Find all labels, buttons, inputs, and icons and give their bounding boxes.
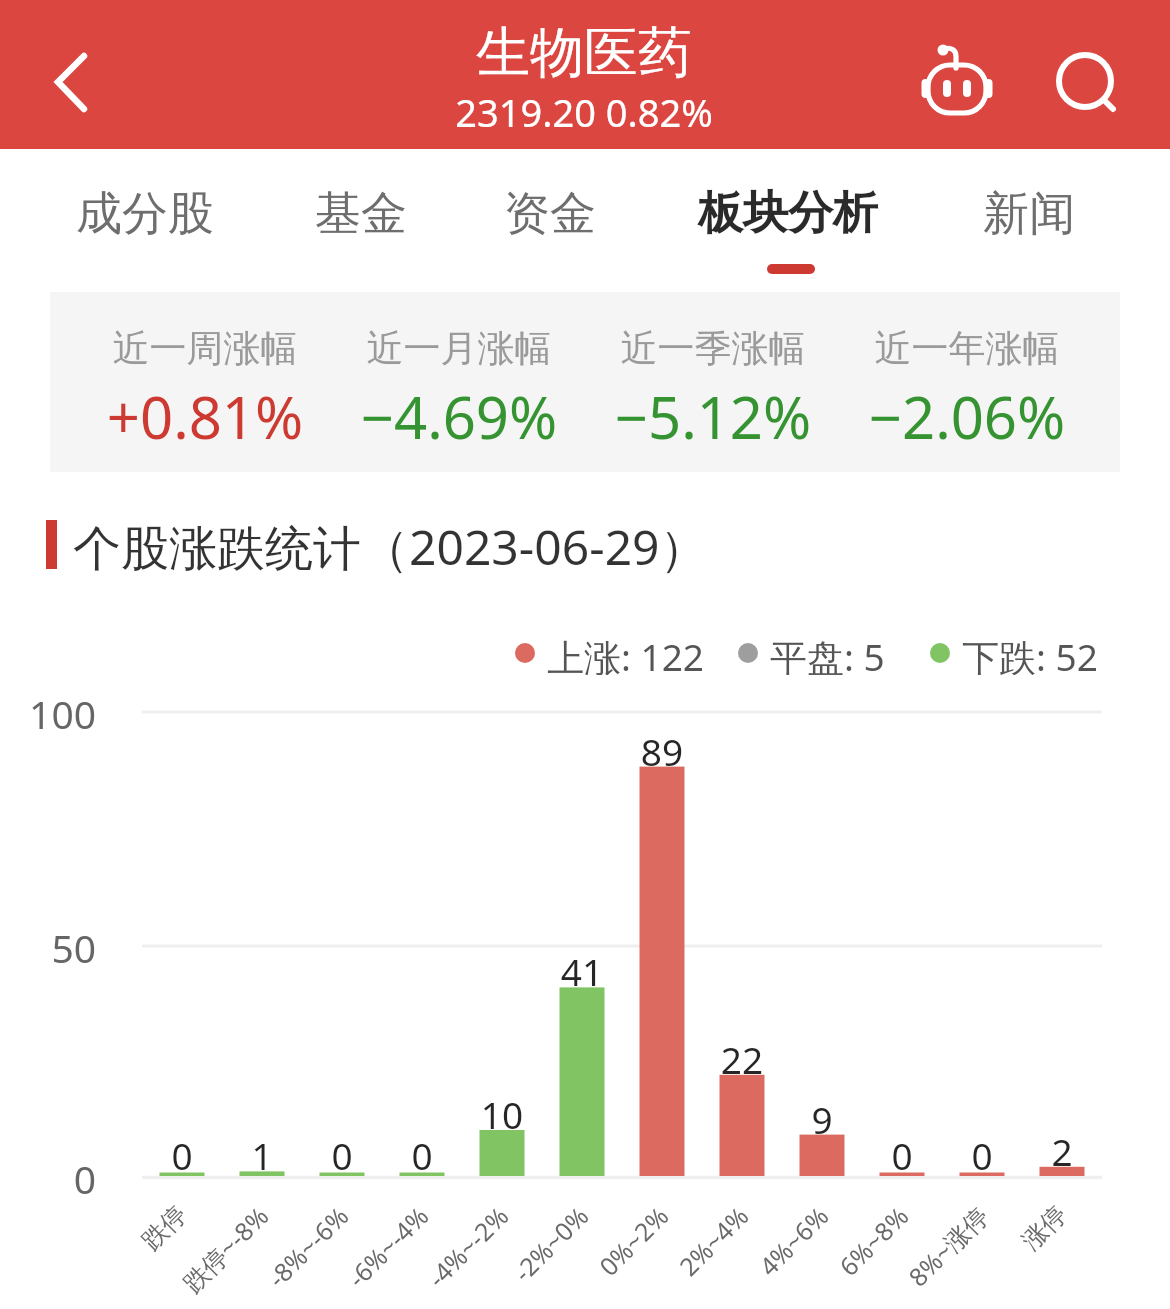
staticText: 89: [602, 726, 722, 776]
staticText: 近一月涨幅: [332, 325, 586, 372]
staticText: 9: [762, 1094, 882, 1144]
staticText: 上涨: 122: [547, 631, 705, 675]
button[interactable]: 新闻: [899, 149, 1159, 269]
staticText: 0: [0, 1152, 96, 1205]
staticText: -4%~-2%: [265, 1199, 515, 1309]
staticText: 8%~涨停: [745, 1199, 995, 1309]
button[interactable]: Search: [1048, 44, 1128, 124]
staticText: 50: [0, 921, 96, 974]
button[interactable]: 基金: [231, 149, 491, 269]
staticText: 4%~6%: [585, 1199, 835, 1309]
button[interactable]: Back: [20, 20, 130, 130]
staticText: 6%~8%: [665, 1199, 915, 1309]
staticText: 41: [522, 946, 642, 996]
staticText: -6%~-4%: [185, 1199, 435, 1309]
staticText: 基金: [231, 185, 491, 243]
staticText: +0.81%: [78, 377, 332, 456]
staticText: 0: [362, 1130, 482, 1180]
button[interactable]: 近一年涨幅: [840, 292, 1094, 472]
staticText: 新闻: [899, 185, 1159, 243]
staticText: −4.69%: [332, 377, 586, 456]
staticText: 2319.20 0.82%: [384, 86, 784, 138]
staticText: 资金: [420, 185, 680, 243]
staticText: 跌停~-8%: [25, 1199, 275, 1309]
staticText: -8%~-6%: [105, 1199, 355, 1309]
button[interactable]: 平盘: 5: [738, 631, 885, 675]
staticText: 生物医药: [384, 19, 784, 87]
staticText: 1: [202, 1130, 322, 1180]
staticText: 22: [682, 1034, 802, 1084]
button[interactable]: 近一周涨幅: [78, 292, 332, 472]
staticText: 成分股: [15, 185, 275, 243]
staticText: 近一年涨幅: [840, 325, 1094, 372]
button[interactable]: 成分股: [15, 149, 275, 269]
button[interactable]: AI assistant: [915, 40, 1001, 126]
staticText: -2%~0%: [345, 1199, 595, 1309]
staticText: 0: [282, 1130, 402, 1180]
staticText: 板块分析: [658, 185, 918, 242]
button[interactable]: 板块分析: [658, 149, 918, 269]
staticText: 平盘: 5: [770, 631, 885, 675]
staticText: 100: [0, 687, 96, 740]
button[interactable]: 下跌: 52: [930, 631, 1098, 675]
staticText: 跌停: [0, 1199, 193, 1309]
staticText: 0%~2%: [425, 1199, 675, 1309]
staticText: 2%~4%: [505, 1199, 755, 1309]
staticText: 0: [922, 1130, 1042, 1180]
staticText: 0: [842, 1130, 962, 1180]
staticText: 0: [122, 1130, 242, 1180]
staticText: 10: [442, 1089, 562, 1139]
staticText: 个股涨跌统计（2023-06-29）: [73, 514, 708, 580]
staticText: −2.06%: [840, 377, 1094, 456]
button[interactable]: 上涨: 122: [515, 631, 705, 675]
staticText: −5.12%: [586, 377, 840, 456]
staticText: 近一季涨幅: [586, 325, 840, 372]
button[interactable]: 近一月涨幅: [332, 292, 586, 472]
staticText: 下跌: 52: [962, 631, 1098, 675]
staticText: 2: [1002, 1126, 1122, 1176]
button[interactable]: 近一季涨幅: [586, 292, 840, 472]
staticText: 涨停: [825, 1199, 1073, 1309]
staticText: 近一周涨幅: [78, 325, 332, 372]
button[interactable]: 资金: [420, 149, 680, 269]
